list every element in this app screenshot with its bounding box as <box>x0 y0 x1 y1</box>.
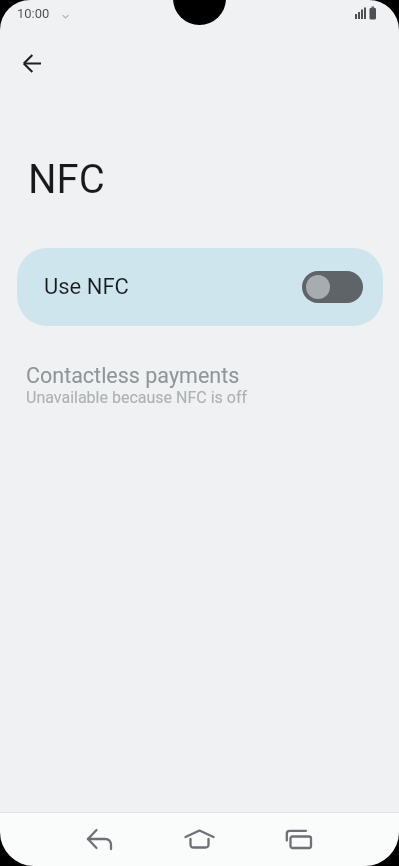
staticText: Use NFC <box>44 274 129 300</box>
staticText: Contactless payments <box>26 363 240 388</box>
button[interactable]: Use NFC <box>17 248 383 326</box>
button[interactable] <box>149 813 249 866</box>
button[interactable] <box>8 39 56 87</box>
button[interactable] <box>302 271 363 303</box>
staticText: 10:00 <box>17 6 50 21</box>
button[interactable] <box>50 813 149 866</box>
staticText: Unavailable because NFC is off <box>26 388 248 407</box>
button[interactable] <box>249 813 349 866</box>
staticText: NFC <box>28 156 105 203</box>
button[interactable]: Contactless payments <box>26 363 248 407</box>
